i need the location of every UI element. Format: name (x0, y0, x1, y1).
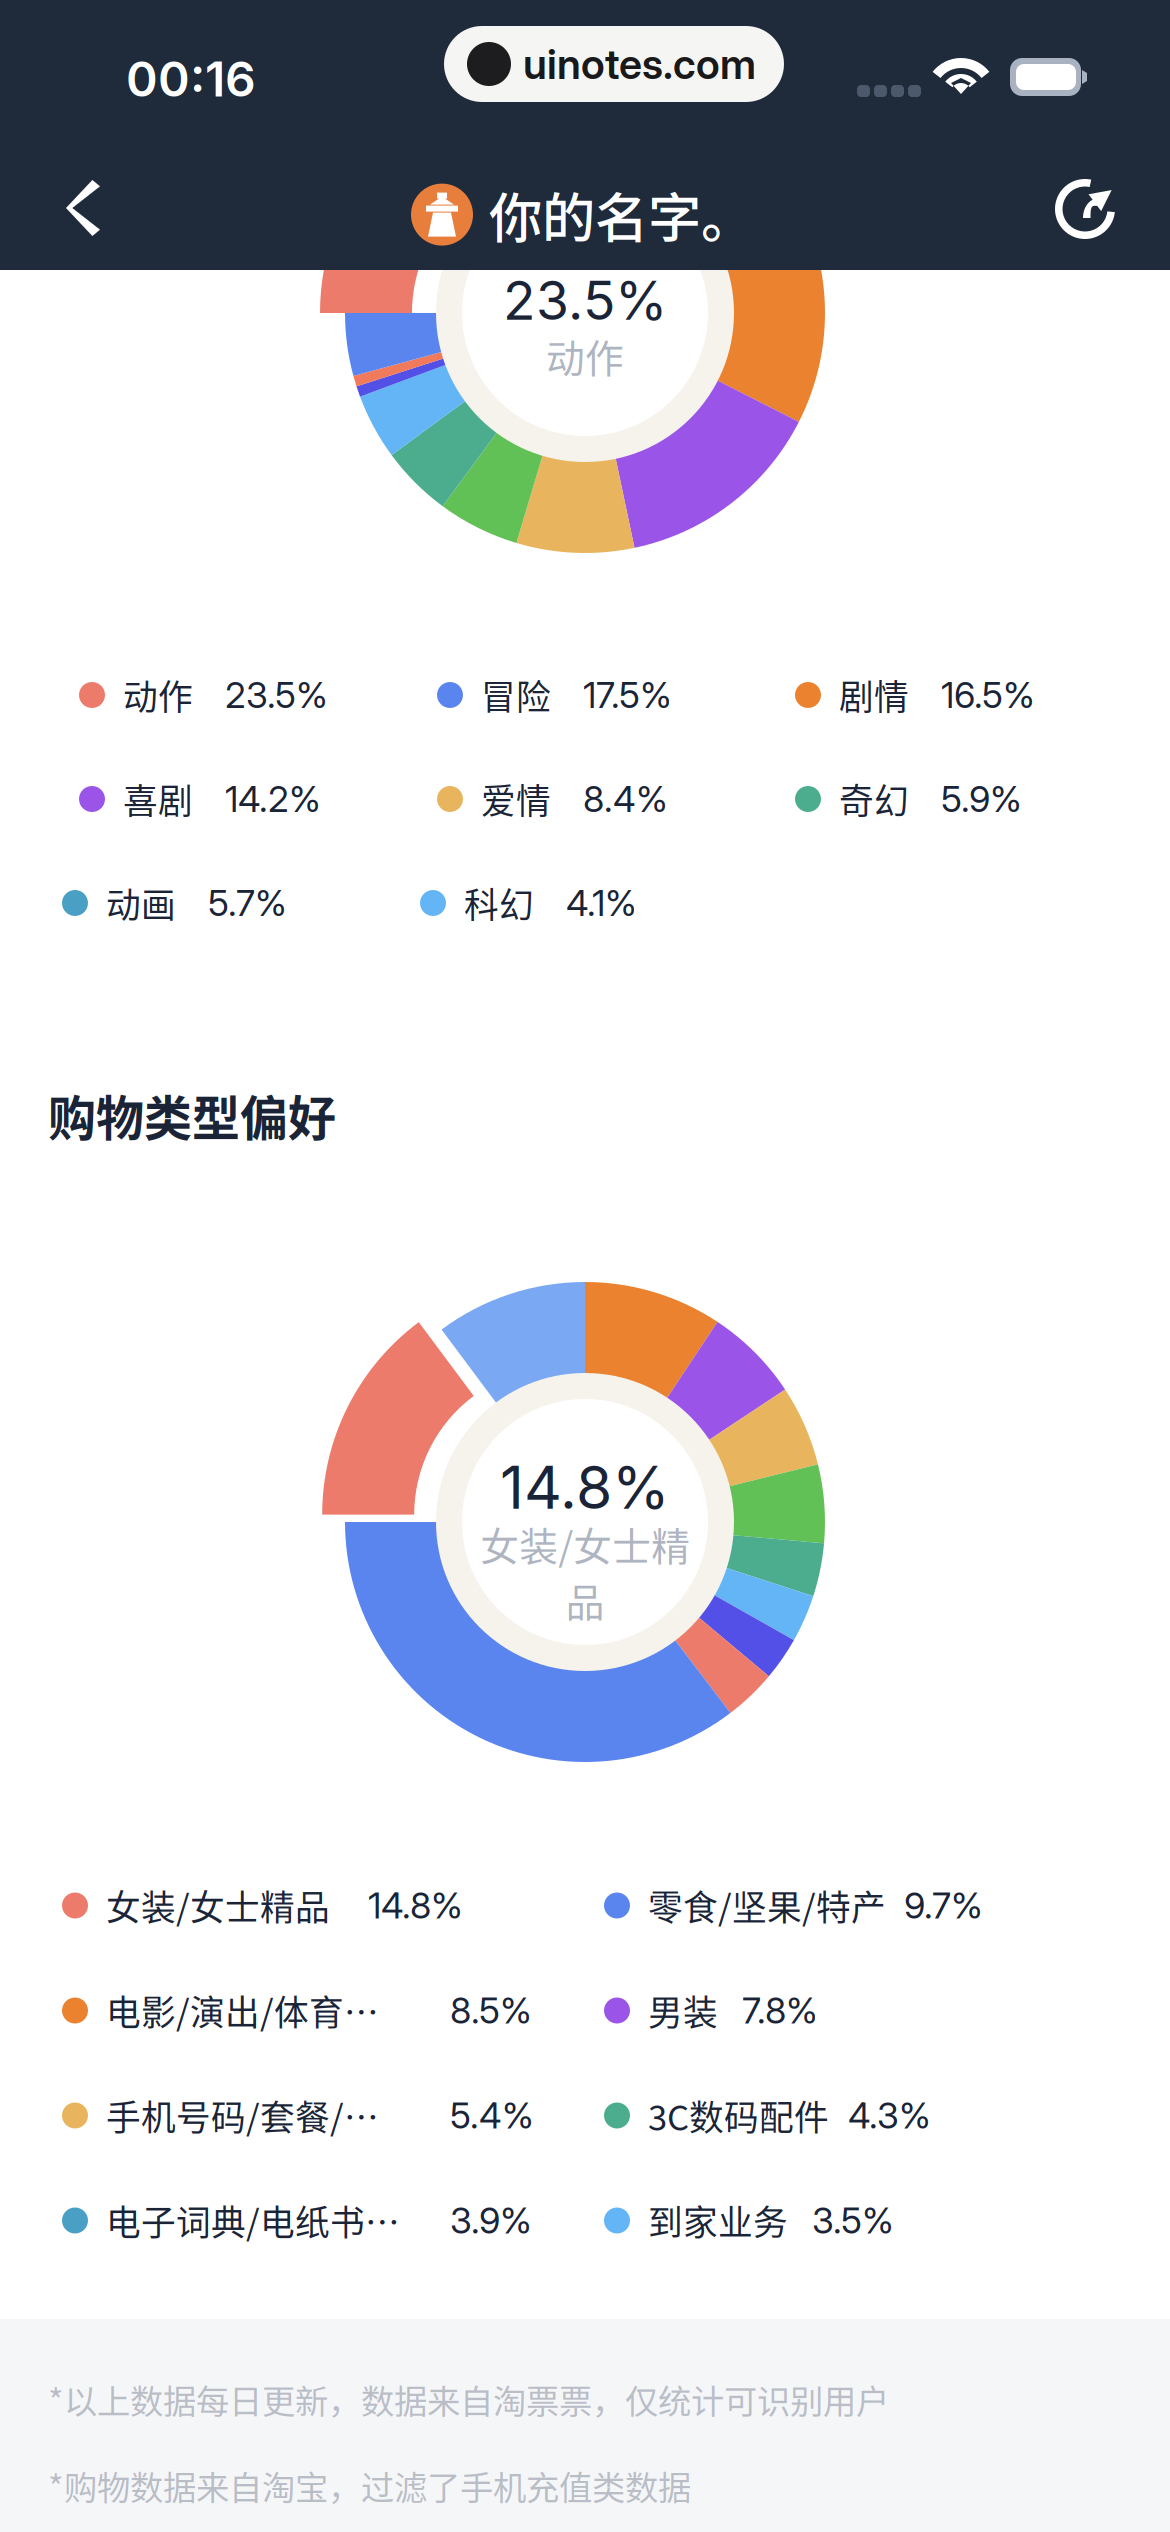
staticText: 电影/演出/体育… (106, 1985, 379, 2036)
staticText: 冒险 (481, 670, 551, 720)
staticText: 14.2% (225, 777, 321, 821)
staticText: 5.4% (450, 2094, 534, 2137)
button[interactable]: 动作 (79, 643, 437, 747)
staticText: 17.5% (583, 673, 672, 717)
staticText: 男装 (648, 1985, 718, 2036)
staticText: 3C数码配件 (648, 2090, 829, 2141)
staticText: 奇幻 (839, 774, 909, 824)
staticText: 8.4% (583, 777, 668, 821)
staticText: 女装/女士精品 (106, 1880, 330, 1931)
staticText: 3.9% (450, 2199, 532, 2242)
staticText: 动作 (123, 670, 193, 720)
staticText: 5.7% (208, 881, 287, 925)
button[interactable]: 到家业务 (604, 2168, 1146, 2273)
staticText: 喜剧 (123, 774, 193, 824)
staticText: 你的名字。 (489, 176, 754, 253)
staticText: 手机号码/套餐/… (106, 2090, 379, 2141)
staticText: 动画 (106, 878, 176, 928)
staticText: 14.8% (368, 1884, 463, 1927)
button[interactable]: 奇幻 (795, 747, 1153, 851)
button[interactable]: 科幻 (420, 851, 778, 955)
staticText: 9.7% (904, 1884, 983, 1927)
staticText: 4.1% (566, 881, 637, 925)
button[interactable]: Share (1030, 148, 1140, 268)
staticText: 23.5% (225, 673, 328, 717)
button[interactable]: 3C数码配件 (604, 2063, 1146, 2168)
button[interactable]: 女装/女士精品 (62, 1853, 604, 1958)
button[interactable]: 喜剧 (79, 747, 437, 851)
button[interactable]: 动画 (62, 851, 420, 955)
staticText: 23.5% (503, 268, 667, 332)
staticText: 女装/女士精品 (480, 1516, 690, 1628)
button[interactable]: 零食/坚果/特产 (604, 1853, 1146, 1958)
staticText: *以上数据每日更新，数据来自淘票票，仅统计可识别用户 (48, 2375, 889, 2423)
staticText: 电子词典/电纸书… (106, 2195, 400, 2246)
staticText: 5.9% (941, 777, 1022, 821)
staticText: 零食/坚果/特产 (648, 1880, 886, 1931)
staticText: 3.5% (812, 2199, 894, 2242)
button[interactable]: Back (28, 148, 138, 268)
staticText: 16.5% (941, 673, 1035, 717)
button[interactable]: 电子词典/电纸书… (62, 2168, 604, 2273)
staticText: 4.3% (848, 2094, 931, 2137)
staticText: 剧情 (839, 670, 909, 720)
staticText: 科幻 (464, 878, 534, 928)
button[interactable]: 冒险 (437, 643, 795, 747)
staticText: 到家业务 (648, 2195, 788, 2246)
button[interactable]: 电影/演出/体育… (62, 1958, 604, 2063)
button[interactable]: 爱情 (437, 747, 795, 851)
staticText: *购物数据来自淘宝，过滤了手机充值类数据 (48, 2461, 691, 2510)
staticText: 14.8% (500, 1452, 670, 1523)
staticText: uinotes.com (523, 39, 756, 89)
staticText: 7.8% (742, 1989, 818, 2032)
staticText: 爱情 (481, 774, 551, 824)
staticText: 购物类型偏好 (48, 1080, 336, 1149)
button[interactable]: 男装 (604, 1958, 1146, 2063)
staticText: 动作 (546, 328, 624, 384)
button[interactable]: 手机号码/套餐/… (62, 2063, 604, 2168)
staticText: 00:16 (126, 50, 256, 108)
button[interactable]: 剧情 (795, 643, 1153, 747)
staticText: 8.5% (450, 1989, 532, 2032)
